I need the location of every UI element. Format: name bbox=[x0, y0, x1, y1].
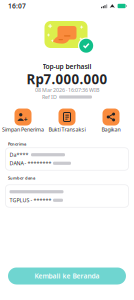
button[interactable]: + bbox=[1, 108, 45, 133]
staticText: Simpan Penerima bbox=[2, 126, 44, 133]
staticText: 08 Mar 2026 · 16:07:36 WIB bbox=[35, 86, 99, 94]
button[interactable]: Kembali ke Beranda bbox=[8, 267, 126, 284]
staticText: DANA - ******** bbox=[9, 160, 51, 167]
staticText: Ref ID bbox=[42, 93, 57, 101]
staticText: Penerima bbox=[8, 141, 26, 147]
button[interactable]: Bagikan bbox=[89, 108, 133, 133]
staticText: Rp7.000.000 bbox=[26, 70, 107, 88]
button[interactable]: Bukti Transaksi bbox=[45, 108, 89, 133]
staticText: Sumber dana bbox=[8, 175, 35, 181]
staticText: Top-up berhasil bbox=[42, 62, 91, 71]
staticText: 16:07 bbox=[8, 2, 26, 10]
staticText: TGPLUS - ****** bbox=[9, 197, 51, 204]
staticText: Bukti Transaksi bbox=[48, 126, 85, 133]
staticText: + bbox=[24, 115, 28, 124]
staticText: Bagikan bbox=[101, 126, 120, 133]
staticText: Da**** bbox=[9, 151, 29, 158]
staticText: Kembali ke Beranda bbox=[34, 272, 99, 280]
